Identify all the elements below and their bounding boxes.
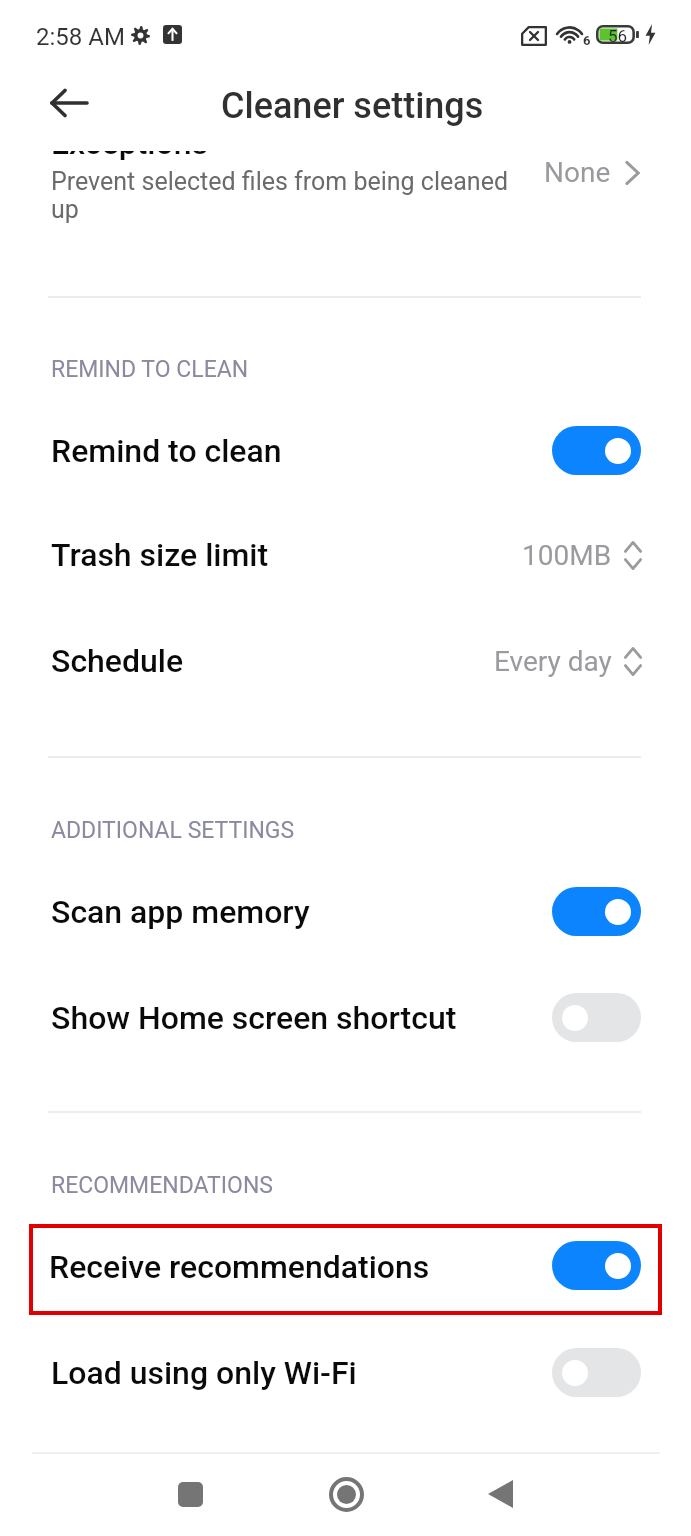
button[interactable]: Remind to clean <box>0 411 691 491</box>
staticText: Prevent selected files from being cleane… <box>51 167 516 224</box>
staticText: ADDITIONAL SETTINGS <box>51 817 295 844</box>
button[interactable]: Toggle off <box>552 993 641 1042</box>
button[interactable]: Toggle on <box>552 887 641 936</box>
button[interactable]: Toggle off <box>552 1348 641 1397</box>
staticText: 2:58 AM <box>36 23 125 51</box>
staticText: Cleaner settings <box>221 85 484 127</box>
staticText: Scan app memory <box>51 893 310 931</box>
staticText: None <box>544 156 611 189</box>
staticText: 6 <box>583 33 591 48</box>
staticText: REMIND TO CLEAN <box>51 356 249 383</box>
button[interactable]: Back <box>465 1459 535 1529</box>
button[interactable]: Receive recommendations <box>29 1224 662 1315</box>
button[interactable]: Home <box>311 1459 381 1529</box>
button[interactable]: Schedule <box>0 626 691 696</box>
staticText: RECOMMENDATIONS <box>51 1172 273 1199</box>
staticText: 56 <box>608 26 628 46</box>
staticText: Show Home screen shortcut <box>51 999 457 1037</box>
staticText: Trash size limit <box>51 536 269 574</box>
staticText: Remind to clean <box>51 432 282 470</box>
button[interactable]: Recent apps <box>155 1459 225 1529</box>
button[interactable]: Load using only Wi-Fi <box>0 1333 691 1413</box>
button[interactable]: Toggle on <box>552 426 641 475</box>
button[interactable]: Toggle on <box>552 1241 641 1290</box>
staticText: 100MB <box>522 539 612 572</box>
staticText: Receive recommendations <box>49 1248 430 1286</box>
button[interactable]: Show Home screen shortcut <box>0 978 691 1058</box>
button[interactable]: Back <box>44 80 94 126</box>
button[interactable]: Trash size limit <box>0 520 691 590</box>
staticText: Schedule <box>51 642 184 680</box>
staticText: Every day <box>494 645 612 678</box>
staticText: Exceptions <box>51 124 208 162</box>
button[interactable]: Exceptions <box>0 100 691 248</box>
button[interactable]: Scan app memory <box>0 872 691 952</box>
staticText: Load using only Wi-Fi <box>51 1354 357 1392</box>
